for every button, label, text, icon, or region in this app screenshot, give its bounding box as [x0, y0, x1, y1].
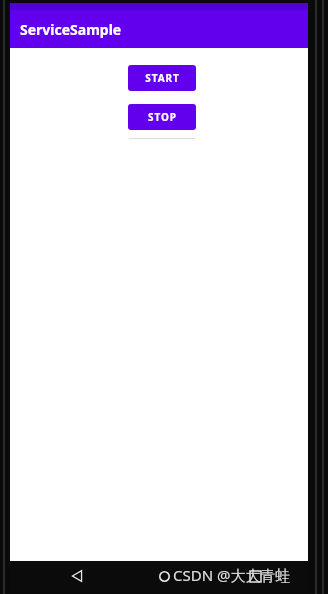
- button[interactable]: Recent apps: [240, 561, 270, 591]
- staticText: ServiceSample: [20, 20, 122, 39]
- button[interactable]: START: [128, 65, 196, 91]
- button[interactable]: Back: [62, 561, 92, 591]
- button[interactable]: STOP: [128, 104, 196, 130]
- staticText: STOP: [148, 110, 177, 124]
- button[interactable]: Home: [149, 561, 179, 591]
- staticText: START: [145, 71, 180, 85]
- staticText: CSDN @大大青蛙: [173, 565, 291, 585]
